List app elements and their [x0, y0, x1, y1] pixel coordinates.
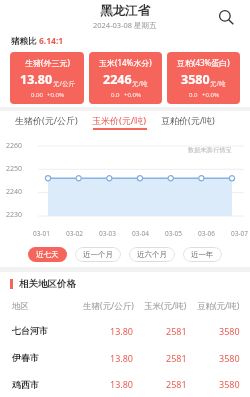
- staticText: 13.80: [110, 325, 134, 337]
- staticText: 七台河市: [12, 325, 48, 336]
- staticText: 近一个月: [83, 250, 113, 259]
- staticText: 2260: [6, 141, 23, 151]
- staticText: 近六个月: [137, 250, 167, 259]
- staticText: 13.80: [110, 352, 134, 364]
- staticText: +0.0%: [124, 91, 141, 99]
- staticText: +0.0%: [47, 91, 64, 99]
- staticText: 0.0: [111, 91, 120, 99]
- staticText: 黑龙江省: [100, 3, 150, 19]
- button[interactable]: Search: [214, 5, 238, 29]
- staticText: 03-05: [165, 229, 182, 238]
- staticText: 玉米(元/吨): [144, 300, 187, 312]
- staticText: 近一年: [191, 250, 214, 259]
- staticText: 玉米(14%水分): [99, 57, 152, 68]
- staticText: 玉米价(元/吨): [92, 114, 147, 126]
- button[interactable]: 近一个月: [75, 247, 121, 262]
- staticText: 元/公斤: [53, 79, 75, 88]
- button[interactable]: 近六个月: [129, 247, 175, 262]
- staticText: 13.80: [110, 378, 134, 390]
- staticText: 数据来源:行情宝: [188, 146, 232, 154]
- staticText: 元/吨: [132, 79, 148, 88]
- staticText: 猪粮比: [11, 35, 39, 47]
- staticText: 13.80: [20, 71, 53, 88]
- button[interactable]: 生猪价(元/公斤): [8, 114, 85, 130]
- staticText: 0.0: [189, 91, 198, 99]
- staticText: 0.00: [31, 91, 43, 99]
- staticText: 生猪价(元/公斤): [15, 114, 78, 126]
- staticText: 豆粕价(元/吨): [161, 114, 215, 126]
- button[interactable]: 近一年: [183, 247, 222, 262]
- staticText: 03-06: [198, 229, 215, 238]
- staticText: 相关地区价格: [19, 278, 76, 290]
- button[interactable]: 七台河市: [0, 317, 250, 344]
- staticText: 03-07: [231, 229, 248, 238]
- staticText: 03-04: [132, 229, 149, 238]
- staticText: 2240: [6, 187, 23, 197]
- staticText: 03-03: [99, 229, 116, 238]
- staticText: 2581: [166, 378, 187, 390]
- button[interactable]: 伊春市: [0, 344, 250, 371]
- button[interactable]: 玉米(14%水分): [89, 52, 162, 104]
- button[interactable]: 鸡西市: [0, 371, 250, 397]
- staticText: 6.14:1: [39, 35, 64, 47]
- staticText: 伊春市: [12, 352, 39, 363]
- button[interactable]: 近七天: [28, 247, 67, 262]
- staticText: 3580: [219, 352, 240, 364]
- staticText: 2581: [166, 325, 187, 337]
- staticText: 生猪(元/公斤): [83, 300, 134, 312]
- staticText: 鸡西市: [12, 379, 39, 390]
- staticText: 地区: [12, 301, 29, 312]
- staticText: 3580: [219, 325, 240, 337]
- staticText: 2246: [103, 71, 132, 88]
- staticText: 2581: [166, 352, 187, 364]
- staticText: 3580: [219, 378, 240, 390]
- staticText: 近七天: [36, 250, 59, 259]
- staticText: 2230: [6, 210, 23, 220]
- staticText: +0.0%: [202, 91, 219, 99]
- staticText: 03-02: [66, 229, 83, 238]
- staticText: 豆粕(元/吨): [197, 300, 240, 312]
- staticText: 2250: [6, 164, 23, 174]
- staticText: 3580: [181, 71, 210, 88]
- staticText: 03-01: [33, 229, 50, 238]
- staticText: 元/吨: [210, 79, 226, 88]
- staticText: 生猪(外三元): [25, 57, 70, 68]
- staticText: 2024-03-08 星期五: [93, 20, 157, 30]
- button[interactable]: 玉米价(元/吨): [85, 114, 154, 130]
- button[interactable]: 豆粕价(元/吨): [154, 114, 222, 130]
- staticText: 豆粕(43%蛋白): [177, 57, 230, 68]
- button[interactable]: 豆粕(43%蛋白): [167, 52, 240, 104]
- button[interactable]: 生猪(外三元): [10, 52, 84, 104]
